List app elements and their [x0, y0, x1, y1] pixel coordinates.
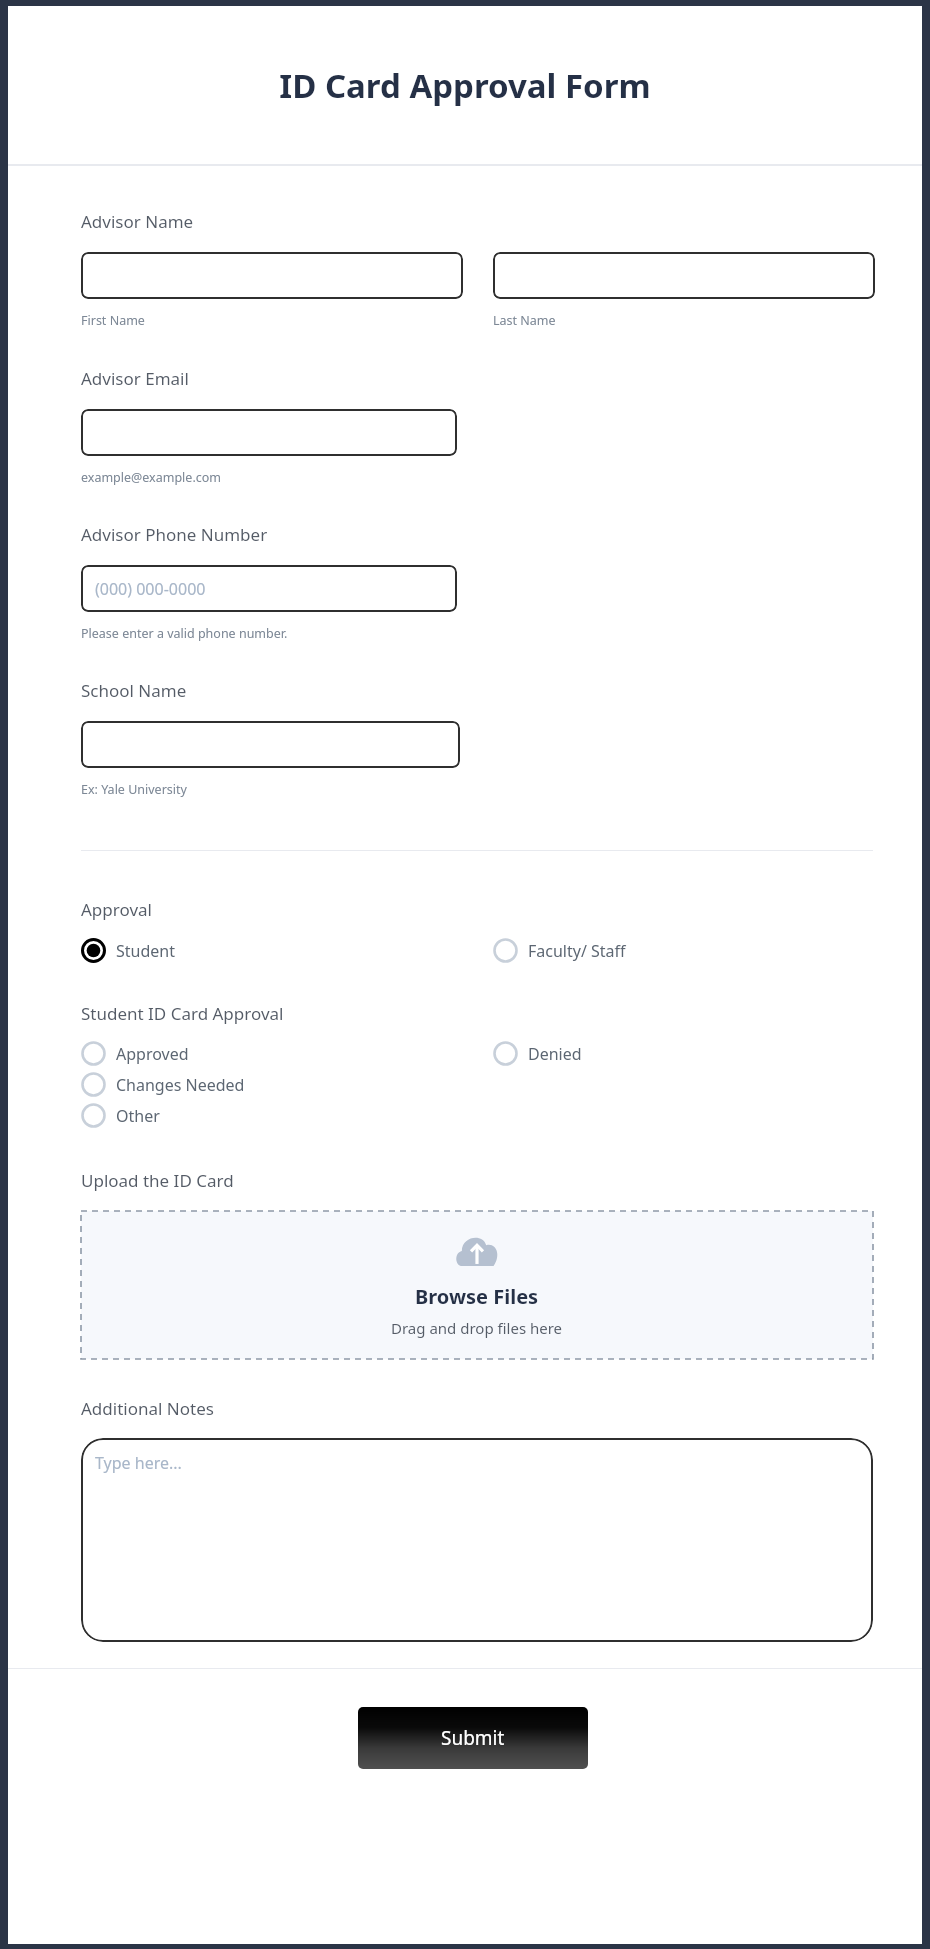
button[interactable]: Approved: [81, 1041, 189, 1066]
staticText: Other: [116, 1105, 160, 1127]
staticText: Approved: [116, 1043, 189, 1065]
button[interactable]: Browse Files: [81, 1211, 873, 1359]
staticText: Advisor Phone Number: [81, 523, 268, 546]
staticText: Faculty/ Staff: [528, 940, 626, 962]
button[interactable]: Type here...: [81, 1438, 873, 1642]
staticText: Last Name: [493, 312, 556, 329]
staticText: ID Card Approval Form: [279, 63, 651, 108]
staticText: Student: [116, 940, 175, 962]
button[interactable]: Changes Needed: [81, 1072, 245, 1097]
button[interactable]: [81, 409, 457, 456]
staticText: (000) 000-0000: [95, 578, 206, 600]
button[interactable]: [493, 252, 875, 299]
staticText: Drag and drop files here: [391, 1318, 563, 1338]
staticText: Type here...: [95, 1452, 182, 1474]
staticText: Denied: [528, 1043, 582, 1065]
staticText: Additional Notes: [81, 1397, 214, 1420]
staticText: example@example.com: [81, 469, 221, 486]
staticText: Student ID Card Approval: [81, 1002, 284, 1025]
staticText: First Name: [81, 312, 145, 329]
button[interactable]: Faculty/ Staff: [493, 938, 626, 963]
staticText: Browse Files: [415, 1283, 539, 1310]
staticText: Upload the ID Card: [81, 1169, 234, 1192]
staticText: Advisor Email: [81, 367, 189, 390]
staticText: Submit: [441, 1725, 505, 1751]
staticText: Changes Needed: [116, 1074, 245, 1096]
button[interactable]: [81, 252, 463, 299]
button[interactable]: Student: [81, 938, 175, 963]
button[interactable]: Denied: [493, 1041, 582, 1066]
staticText: Ex: Yale University: [81, 781, 187, 798]
staticText: School Name: [81, 679, 187, 702]
staticText: Advisor Name: [81, 210, 194, 233]
button[interactable]: Submit: [358, 1707, 588, 1769]
staticText: Please enter a valid phone number.: [81, 625, 288, 642]
staticText: Approval: [81, 898, 152, 921]
button[interactable]: [81, 721, 460, 768]
button[interactable]: (000) 000-0000: [81, 565, 457, 612]
button[interactable]: Other: [81, 1103, 160, 1128]
